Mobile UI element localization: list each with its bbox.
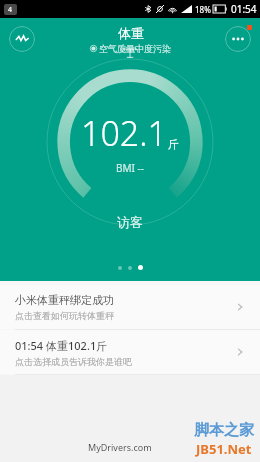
- staticText: 01:54: [231, 2, 257, 16]
- staticText: 点击查看如何玩转体重秤: [15, 310, 114, 321]
- button[interactable]: 小米体重秤绑定成功: [0, 285, 260, 329]
- button[interactable]: 01:54 体重102.1斤: [0, 330, 260, 374]
- button[interactable]: More options: [225, 26, 251, 52]
- staticText: 脚本之家: [194, 421, 254, 440]
- staticText: 斤: [168, 137, 179, 151]
- staticText: 01:54 体重102.1斤: [15, 338, 108, 353]
- staticText: BMI --: [116, 161, 144, 175]
- staticText: 访客: [117, 214, 143, 230]
- staticText: 102.1: [81, 110, 167, 156]
- staticText: MyDrivers.com: [88, 441, 152, 453]
- staticText: JB51.Net: [196, 440, 252, 458]
- staticText: 小米体重秤绑定成功: [15, 293, 114, 307]
- staticText: 4: [8, 5, 13, 15]
- staticText: 18%: [195, 4, 211, 15]
- staticText: 空气质量中度污染: [99, 43, 171, 54]
- button[interactable]: Pulse: [9, 26, 35, 52]
- staticText: 点击选择成员告诉我你是谁吧: [15, 356, 132, 367]
- staticText: 体重: [118, 25, 144, 41]
